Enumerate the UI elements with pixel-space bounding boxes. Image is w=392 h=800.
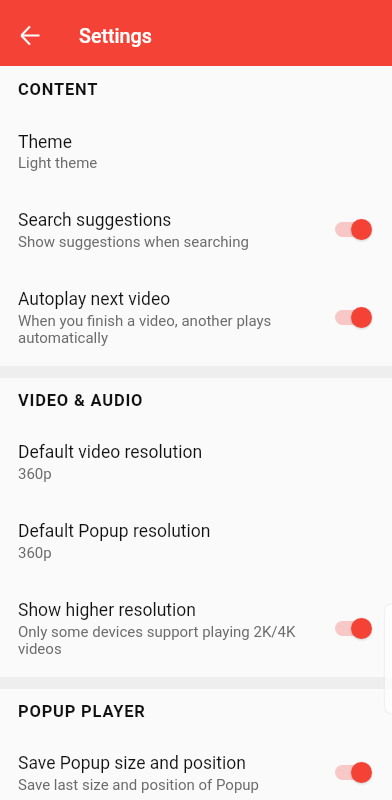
staticText: Show suggestions when searching [18, 233, 249, 251]
staticText: CONTENT [18, 80, 99, 99]
staticText: Autoplay next video [18, 289, 171, 310]
button[interactable]: Navigate up [8, 14, 51, 57]
button[interactable]: Show higher resolution [0, 568, 392, 677]
button[interactable]: Toggle Save Popup size and position [335, 761, 371, 783]
staticText: Show higher resolution [18, 600, 196, 621]
staticText: When you finish a video, another plays a… [18, 312, 307, 346]
staticText: Light theme [18, 154, 98, 172]
staticText: Save Popup size and position [18, 753, 246, 774]
button[interactable]: Toggle Search suggestions [335, 218, 371, 240]
staticText: Default video resolution [18, 442, 203, 463]
button[interactable]: Save Popup size and position [0, 721, 392, 800]
button[interactable]: Toggle Show higher resolution [335, 617, 371, 639]
staticText: Theme [18, 132, 72, 153]
staticText: 360p [18, 465, 52, 483]
button[interactable]: Theme [0, 99, 392, 177]
button[interactable]: Default video resolution [0, 410, 392, 489]
staticText: VIDEO & AUDIO [18, 391, 144, 410]
button[interactable]: Autoplay next video [0, 256, 392, 366]
staticText: Settings [79, 25, 152, 48]
staticText: Search suggestions [18, 210, 172, 231]
staticText: Default Popup resolution [18, 521, 211, 542]
staticText: Only some devices support playing 2K/4K … [18, 623, 307, 657]
staticText: Save last size and position of Popup [18, 776, 259, 794]
staticText: POPUP PLAYER [18, 702, 146, 721]
button[interactable]: Search suggestions [0, 177, 392, 256]
button[interactable]: Toggle Autoplay next video [335, 306, 371, 328]
staticText: 360p [18, 544, 52, 562]
button[interactable]: Default Popup resolution [0, 489, 392, 568]
